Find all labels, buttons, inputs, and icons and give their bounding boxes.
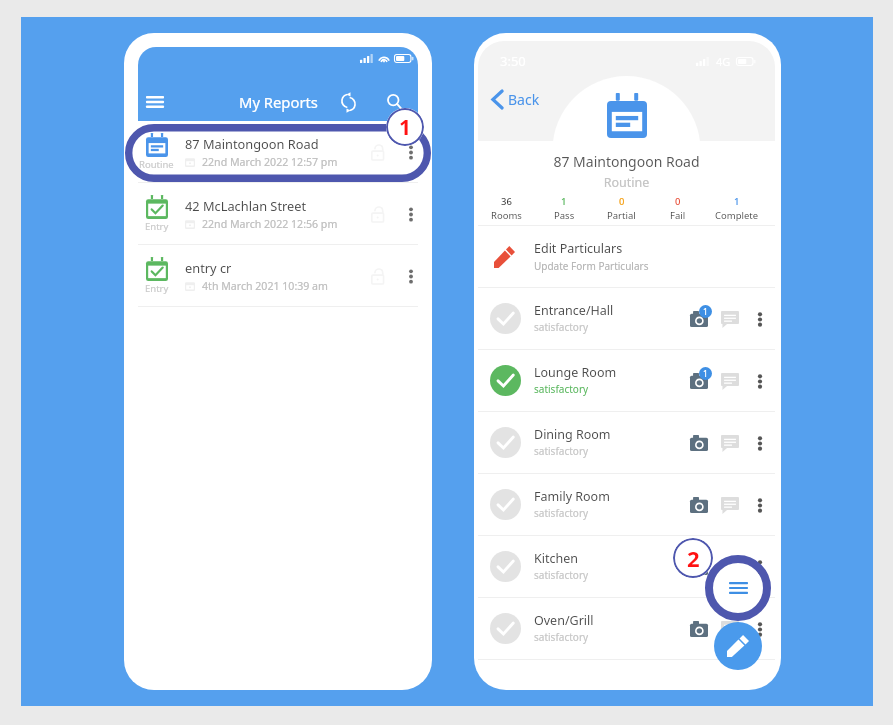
button[interactable]: More options [752,492,768,518]
staticText: 3:50 [500,52,526,70]
button[interactable]: Unlock [365,139,391,165]
staticText: Fail [670,209,686,222]
staticText: 22nd March 2022 12:57 pm [202,155,338,169]
button[interactable]: More options [752,430,768,456]
staticText: Pass [554,209,575,222]
staticText: Entry [145,282,169,295]
staticText: 36 [501,195,512,208]
button[interactable]: Notes [721,552,739,582]
button[interactable]: More options [752,306,768,332]
staticText: Entry [145,220,169,233]
staticText: 0 [675,195,681,208]
staticText: satisfactory [534,506,589,520]
staticText: Entrance/Hall [534,302,614,319]
button[interactable]: Family Room [478,474,775,535]
staticText: satisfactory [534,382,589,396]
staticText: Rooms [491,209,522,222]
button[interactable]: Photos [686,490,712,520]
button[interactable]: More options [404,201,418,227]
button[interactable]: Unlock [365,201,391,227]
staticText: 1 [734,195,740,208]
staticText: Oven/Grill [534,612,594,629]
staticText: 22nd March 2022 12:56 pm [202,217,338,231]
staticText: 1 [703,368,708,380]
staticText: Kitchen [534,550,578,567]
button[interactable]: Menu [713,563,763,613]
button[interactable]: Oven/Grill [478,598,775,659]
button[interactable]: Photos [686,304,712,334]
button[interactable]: Menu [141,88,169,116]
staticText: 87 Maintongoon Road [185,135,319,152]
button[interactable]: My Reports [239,92,318,112]
staticText: entry cr [185,259,232,276]
staticText: Edit Particulars [534,240,623,257]
staticText: 4G [716,54,731,69]
staticText: Dining Room [534,426,611,443]
staticText: Lounge Room [534,364,617,381]
staticText: Partial [607,209,636,222]
staticText: Routine [478,174,775,191]
button[interactable]: Notes [721,366,739,396]
button[interactable]: Entrance/Hall [478,288,775,349]
staticText: Back [508,90,540,109]
button[interactable]: Photos [686,614,712,644]
staticText: satisfactory [534,568,589,582]
button[interactable]: Notes [721,428,739,458]
staticText: 2 [687,543,700,573]
staticText: 1 [703,306,708,318]
button[interactable]: Search [379,86,411,118]
button[interactable]: Refresh [332,86,364,118]
staticText: Complete [715,209,759,222]
staticText: 87 Maintongoon Road [478,152,775,171]
button[interactable]: Lounge Room [478,350,775,411]
staticText: Family Room [534,488,610,505]
button[interactable]: More options [752,368,768,394]
staticText: Routine [139,158,174,171]
button[interactable]: Notes [721,490,739,520]
button[interactable]: Routine [138,121,418,182]
staticText: 42 McLachlan Street [185,197,307,214]
button[interactable]: Back [488,86,544,113]
staticText: 1 [561,195,567,208]
button[interactable]: Entry [138,245,418,306]
button[interactable]: Notes [721,614,739,644]
button[interactable]: Dining Room [478,412,775,473]
button[interactable]: Unlock [365,263,391,289]
button[interactable]: Photos [686,552,712,582]
staticText: satisfactory [534,444,589,458]
button[interactable]: Notes [721,304,739,334]
staticText: satisfactory [534,630,589,644]
button[interactable]: Photos [686,366,712,396]
staticText: Update Form Particulars [534,259,649,273]
button[interactable]: Edit Particulars [478,226,775,287]
staticText: 4th March 2021 10:39 am [202,279,328,293]
button[interactable]: Edit [714,622,762,670]
staticText: 0 [619,195,625,208]
button[interactable]: More options [752,616,768,642]
button[interactable]: More options [752,554,768,580]
staticText: 1 [399,113,412,142]
button[interactable]: More options [404,139,418,165]
button[interactable]: Kitchen [478,536,775,597]
button[interactable]: More options [404,263,418,289]
staticText: satisfactory [534,320,589,334]
button[interactable]: Photos [686,428,712,458]
button[interactable]: Entry [138,183,418,244]
